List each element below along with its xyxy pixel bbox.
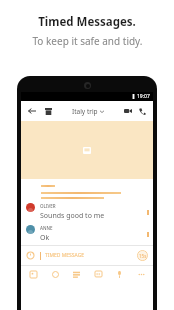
staticText: Sounds good to me [40,211,105,221]
staticText: Ok [40,233,50,243]
button[interactable]: Voice message [112,267,126,281]
button[interactable]: Send [137,250,148,261]
button[interactable]: Archive [42,105,54,117]
button[interactable]: Stickers [69,267,83,281]
staticText: Italy trip [72,107,98,116]
staticText: Timed Messages. [38,14,136,30]
button[interactable]: Back [26,105,38,117]
button[interactable]: Gallery [26,267,40,281]
button[interactable]: Camera [48,267,62,281]
staticText: TIMED MESSAGE [45,252,137,259]
button[interactable]: Call [136,105,148,117]
staticText: OLIVER [40,203,56,209]
staticText: 19:07 [137,93,150,100]
button[interactable]: Video call [122,105,134,117]
button[interactable]: OLIVER [26,203,149,221]
button[interactable]: Timer [26,251,35,260]
staticText: To keep it safe and tidy. [32,34,143,48]
staticText: 15s [139,253,147,259]
button[interactable]: GIF [91,267,105,281]
button[interactable]: ANNE [26,225,149,243]
button[interactable]: More [134,267,148,281]
button[interactable]: Italy trip [72,107,104,116]
staticText: ANNE [40,225,53,231]
button[interactable]: Photo [21,121,153,179]
